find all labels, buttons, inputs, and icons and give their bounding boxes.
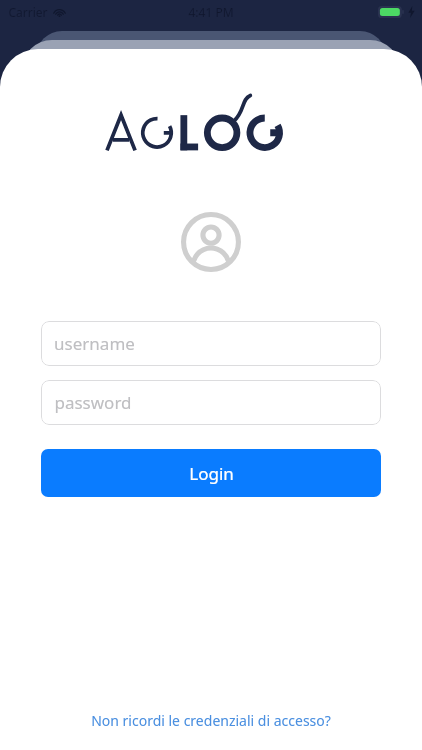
staticText: 4:41 PM xyxy=(188,4,234,20)
button[interactable]: username xyxy=(41,321,381,366)
staticText: username xyxy=(54,332,135,355)
staticText: Carrier xyxy=(8,4,48,20)
button[interactable]: password xyxy=(41,380,381,425)
staticText: Non ricordi le credenziali di accesso? xyxy=(91,711,331,730)
staticText: Login xyxy=(189,462,234,485)
button[interactable]: Non ricordi le credenziali di accesso? xyxy=(77,705,345,736)
button[interactable]: Login xyxy=(41,449,381,497)
staticText: password xyxy=(54,391,132,414)
